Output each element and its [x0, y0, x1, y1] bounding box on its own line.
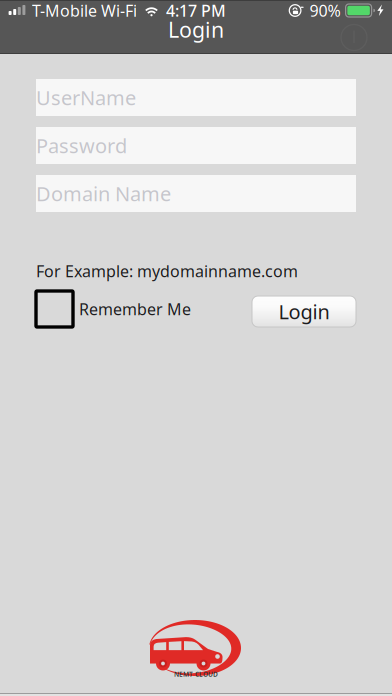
- staticText: Login: [168, 15, 224, 44]
- staticText: For Example: mydomainname.com: [36, 260, 298, 282]
- staticText: NEMT CLOUD: [174, 670, 218, 678]
- button[interactable]: Login: [252, 291, 356, 327]
- staticText: Password: [36, 132, 127, 159]
- staticText: Remember Me: [79, 298, 191, 320]
- staticText: T-Mobile Wi-Fi: [32, 0, 137, 21]
- staticText: 90%: [310, 0, 341, 21]
- button[interactable]: Remember Me: [36, 291, 73, 327]
- staticText: Login: [278, 298, 329, 325]
- staticText: UserName: [36, 84, 136, 111]
- staticText: 4:17 PM: [166, 0, 226, 21]
- staticText: Domain Name: [36, 180, 171, 207]
